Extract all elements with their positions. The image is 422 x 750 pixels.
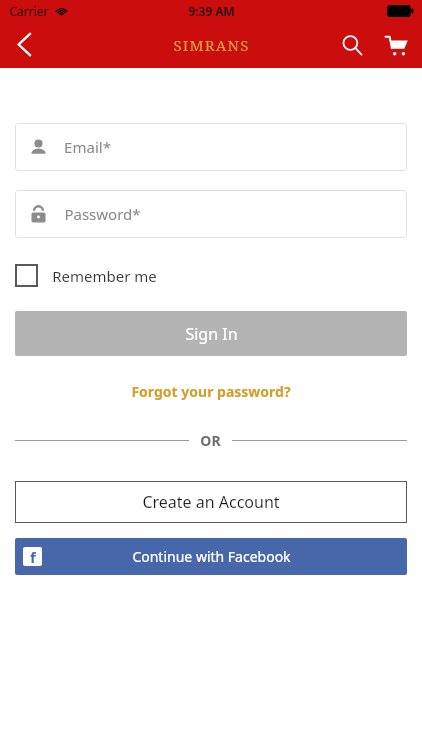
button[interactable]: Create an Account	[15, 481, 407, 523]
staticText: Email*	[64, 137, 111, 157]
button[interactable]: Back	[0, 21, 48, 68]
button[interactable]: Password*	[15, 190, 407, 238]
button[interactable]: Search	[330, 23, 374, 67]
staticText: Carrier	[9, 3, 49, 19]
button[interactable]: Shopping cart	[374, 23, 418, 67]
staticText: Create an Account	[142, 491, 280, 513]
button[interactable]: Remember me	[15, 260, 157, 291]
button[interactable]: Email*	[15, 123, 407, 171]
button[interactable]: f	[15, 538, 407, 575]
staticText: Forgot your password?	[131, 382, 291, 401]
staticText: f	[30, 547, 36, 566]
staticText: OR	[200, 431, 221, 450]
staticText: SIMRANS	[173, 35, 250, 55]
staticText: Sign In	[185, 323, 238, 345]
staticText: Remember me	[52, 266, 157, 286]
staticText: Password*	[64, 204, 141, 224]
staticText: 9:39 AM	[188, 3, 235, 19]
staticText: Continue with Facebook	[132, 547, 291, 566]
button[interactable]: Sign In	[15, 311, 407, 356]
button[interactable]: Forgot your password?	[119, 378, 303, 405]
